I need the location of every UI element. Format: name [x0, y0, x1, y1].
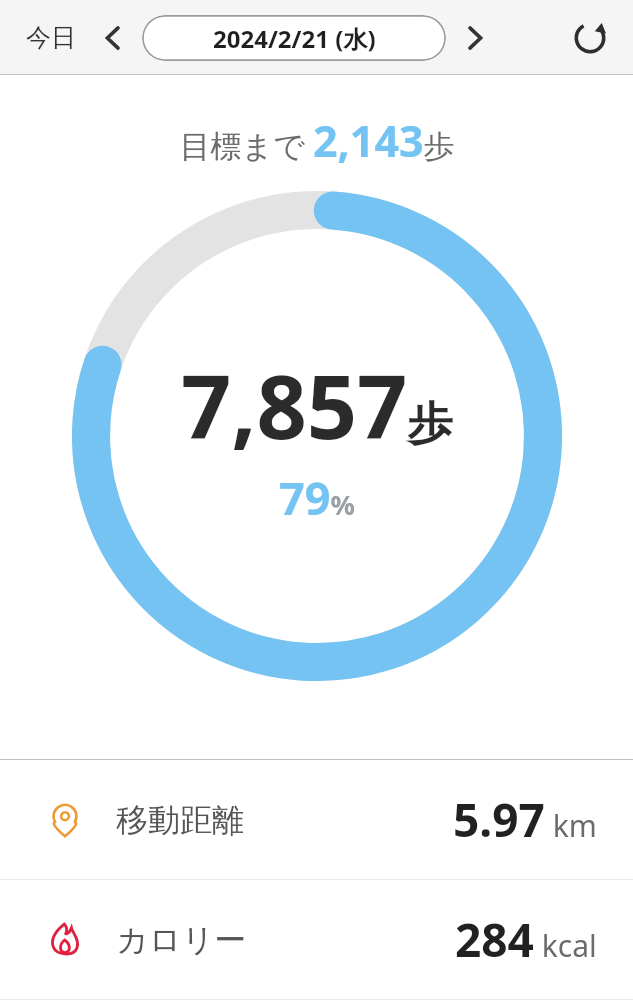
staticText: 2024/2/21 (水) [213, 22, 376, 55]
staticText: 移動距離 [116, 800, 244, 840]
button[interactable]: Distance [0, 760, 633, 879]
button[interactable]: Previous day [90, 15, 136, 61]
staticText: 79% [279, 467, 355, 528]
other: Distance [44, 799, 86, 841]
button[interactable]: Next day [452, 15, 498, 61]
button[interactable]: Calories [0, 880, 633, 999]
staticText: 7,857歩 [181, 345, 453, 465]
button[interactable]: 2024/2/21 (水) [142, 15, 446, 61]
other: Calories [44, 919, 86, 961]
button[interactable]: Refresh [563, 11, 617, 65]
staticText: 目標まで 2,143歩 [179, 111, 455, 170]
staticText: カロリー [116, 920, 247, 960]
button[interactable]: 今日 [0, 12, 90, 63]
staticText: 今日 [26, 22, 76, 53]
staticText: 284 kcal [455, 908, 597, 971]
staticText: 5.97 km [453, 788, 597, 851]
